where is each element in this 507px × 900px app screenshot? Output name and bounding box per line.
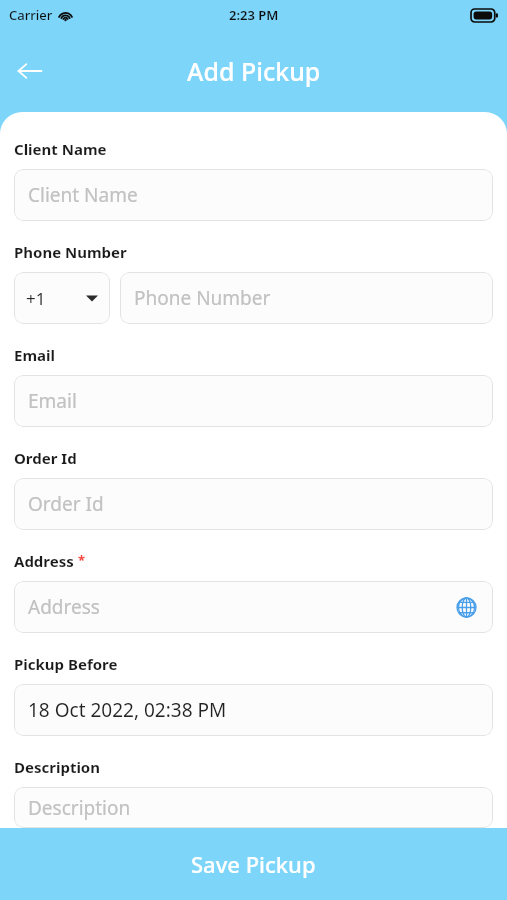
staticText: Description [28, 795, 131, 821]
staticText: Pickup Before [14, 654, 118, 674]
button[interactable]: Description [14, 787, 493, 828]
staticText: Email [14, 345, 55, 365]
staticText: Description [14, 757, 100, 777]
staticText: Phone Number [14, 242, 127, 262]
button[interactable]: Client Name [14, 169, 493, 221]
staticText: Client Name [14, 139, 107, 159]
staticText: Address [28, 594, 100, 620]
staticText: Order Id [28, 491, 104, 517]
button[interactable]: Save Pickup [0, 828, 507, 900]
button[interactable]: Back [6, 47, 54, 95]
button[interactable]: Address [14, 581, 493, 633]
staticText: +1 [26, 287, 46, 310]
button[interactable]: 18 Oct 2022, 02:38 PM [14, 684, 493, 736]
staticText: 18 Oct 2022, 02:38 PM [28, 697, 227, 723]
staticText: Phone Number [134, 285, 271, 311]
staticText: Email [28, 388, 77, 414]
staticText: Address [14, 551, 74, 571]
button[interactable]: Order Id [14, 478, 493, 530]
staticText: Client Name [28, 182, 138, 208]
button[interactable]: Pick location on map [449, 590, 483, 624]
staticText: 2:23 PM [229, 6, 279, 24]
staticText: Save Pickup [191, 849, 316, 879]
button[interactable]: Email [14, 375, 493, 427]
staticText: * [78, 551, 86, 569]
button[interactable]: Phone Number [120, 272, 493, 324]
staticText: Order Id [14, 448, 77, 468]
staticText: Carrier [9, 6, 53, 24]
button[interactable]: +1 [14, 272, 110, 324]
staticText: Add Pickup [187, 54, 321, 88]
